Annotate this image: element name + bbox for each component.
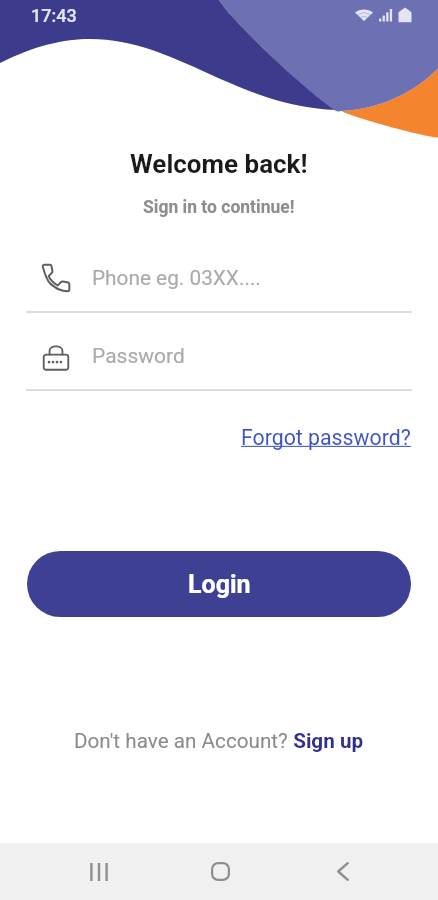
staticText: Sign up — [288, 729, 364, 753]
staticText: Login — [188, 570, 251, 599]
button[interactable]: Forgot password? — [241, 425, 411, 450]
button[interactable]: Login — [27, 551, 411, 617]
staticText: Don't have an Account? — [74, 729, 288, 753]
staticText: Sign in to continue! — [143, 197, 295, 218]
staticText: 17:43 — [31, 5, 77, 26]
staticText: Password — [92, 344, 185, 369]
button[interactable]: Back — [306, 843, 379, 900]
button[interactable]: Sign up — [288, 729, 364, 753]
button[interactable]: Home — [184, 843, 257, 900]
staticText: Forgot password? — [241, 425, 411, 450]
staticText: Phone eg. 03XX.... — [92, 266, 261, 290]
staticText: Welcome back! — [130, 149, 308, 179]
button[interactable]: Recent apps — [62, 843, 135, 900]
